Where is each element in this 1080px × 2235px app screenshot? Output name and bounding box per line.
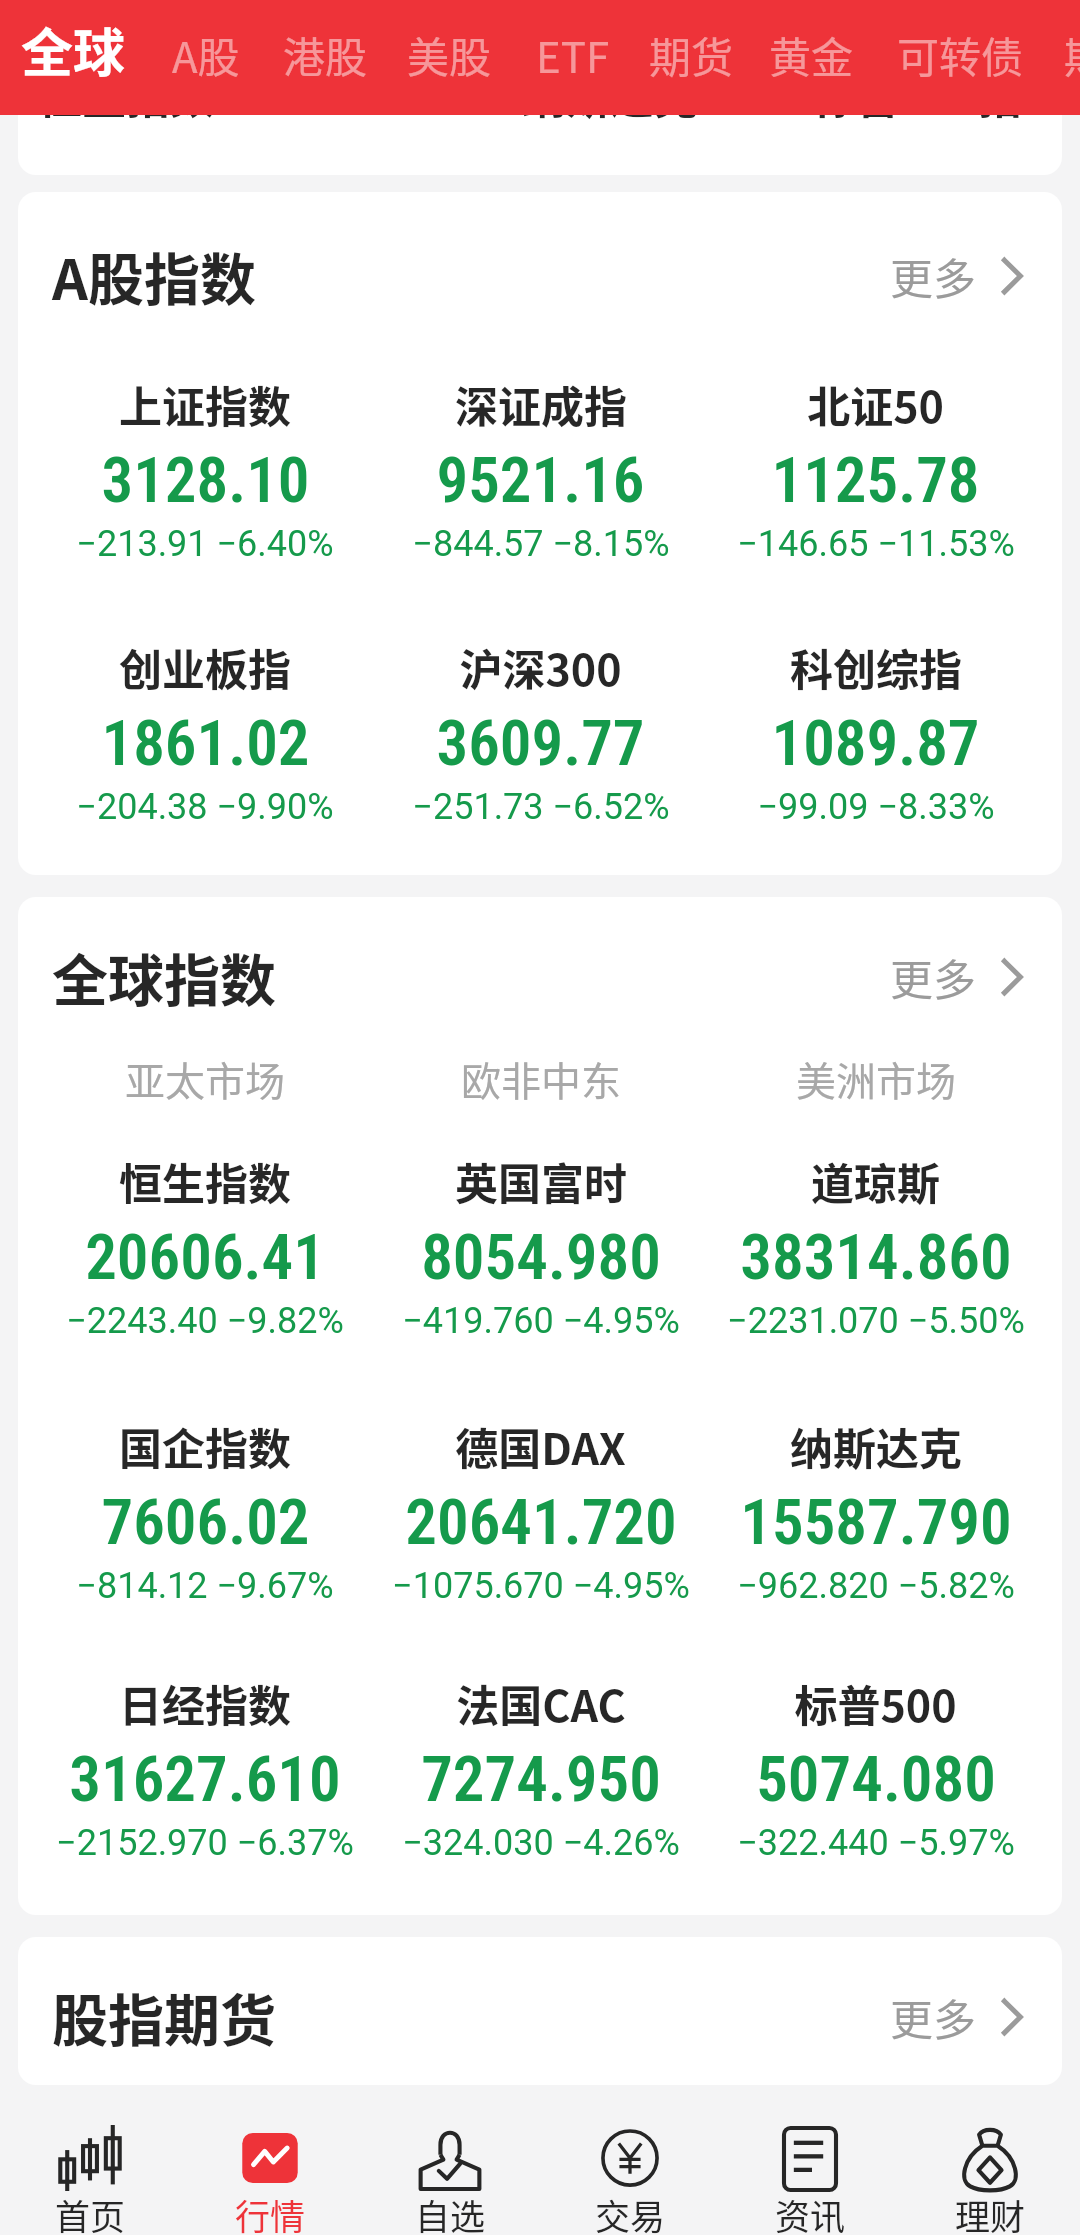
staticText: A股 [172, 24, 240, 85]
staticText: −814.12 −9.67% [76, 1565, 334, 1607]
staticText: −146.65 −11.53% [737, 523, 1015, 565]
staticText: 德国DAX [455, 1415, 626, 1477]
button[interactable]: 可转债 [877, 0, 1043, 115]
button[interactable]: 法国CAC [373, 1677, 708, 1857]
staticText: 9521.16 [436, 444, 645, 518]
staticText: −322.440 −5.97% [737, 1822, 1015, 1864]
staticText: 1089.87 [771, 707, 980, 781]
button[interactable]: 科创综指 [708, 641, 1043, 821]
staticText: 标普500 [794, 1672, 957, 1734]
staticText: 恒生指数 [38, 63, 214, 127]
staticText: 沪深300 [459, 636, 622, 698]
button[interactable]: 更多 [890, 1986, 1022, 2048]
staticText: 可转债 [897, 24, 1024, 85]
button[interactable]: 期货 [629, 0, 753, 115]
staticText: 3128.10 [101, 444, 310, 518]
staticText: 港股 [283, 24, 368, 85]
staticText: 创业板指 [119, 636, 291, 698]
staticText: 标普500指 [812, 63, 1022, 127]
button[interactable]: 恒生指数 [37, 1155, 373, 1335]
staticText: −844.57 −8.15% [412, 523, 670, 565]
staticText: 自选 [415, 2189, 486, 2235]
button[interactable]: 北证50 [708, 378, 1043, 558]
button[interactable]: 纳斯达克 [708, 1420, 1043, 1600]
staticText: 科创综指 [790, 636, 962, 698]
staticText: 亚太市场 [125, 1050, 285, 1108]
button[interactable]: 港股 [263, 0, 387, 115]
staticText: −99.09 −8.33% [757, 786, 995, 828]
staticText: 更多 [890, 245, 976, 307]
staticText: 7606.02 [101, 1486, 310, 1560]
staticText: 美股 [407, 24, 492, 85]
staticText: 美洲市场 [796, 1050, 956, 1108]
button[interactable]: 首页 [0, 2085, 180, 2235]
button[interactable]: 资讯 [720, 2085, 900, 2235]
button[interactable]: 国企指数 [37, 1420, 373, 1600]
staticText: 1861.02 [101, 707, 310, 781]
staticText: −2243.40 −9.82% [66, 1300, 344, 1342]
button[interactable]: 全球 [9, 0, 137, 115]
button[interactable]: A股指数 [52, 235, 256, 316]
button[interactable]: 道琼斯 [708, 1155, 1043, 1335]
button[interactable]: 交易 [540, 2085, 720, 2235]
staticText: 纳斯达克 [790, 1415, 962, 1477]
staticText: 交易 [595, 2189, 666, 2235]
staticText: 更多 [890, 946, 976, 1008]
staticText: −962.820 −5.82% [737, 1565, 1015, 1607]
button[interactable]: 股指期货 [52, 1976, 276, 2057]
staticText: −1075.670 −4.95% [392, 1565, 690, 1607]
staticText: 1125.78 [771, 444, 980, 518]
staticText: 行情 [235, 2189, 306, 2235]
button[interactable]: 期权 [1044, 0, 1080, 115]
button[interactable]: 英国富时 [373, 1155, 708, 1335]
staticText: 日经指数 [119, 1672, 291, 1734]
staticText: 更多 [890, 1986, 976, 2048]
staticText: 恒生指数 [119, 1150, 291, 1212]
staticText: −419.760 −4.95% [402, 1300, 680, 1342]
staticText: −204.38 −9.90% [76, 786, 334, 828]
staticText: −213.91 −6.40% [76, 523, 334, 565]
staticText: 全球 [21, 12, 126, 87]
button[interactable]: 全球指数 [52, 936, 276, 1017]
staticText: 20606.41 [85, 1221, 325, 1295]
button[interactable]: 美股 [387, 0, 511, 115]
staticText: 15587.790 [740, 1486, 1012, 1560]
staticText: 38314.860 [740, 1221, 1012, 1295]
staticText: −2152.970 −6.37% [56, 1822, 354, 1864]
button[interactable]: 标普500 [708, 1677, 1043, 1857]
staticText: 理财 [955, 2189, 1026, 2235]
staticText: 北证50 [807, 373, 944, 435]
button[interactable]: 更多 [890, 946, 1022, 1008]
button[interactable]: 德国DAX [373, 1420, 708, 1600]
button[interactable]: A股 [152, 0, 276, 115]
staticText: 股指期货 [52, 1976, 276, 2057]
staticText: 7274.950 [421, 1743, 661, 1817]
button[interactable]: 更多 [890, 245, 1022, 307]
staticText: 纳斯达克 [522, 63, 698, 127]
button[interactable]: 行情 [180, 2085, 360, 2235]
button[interactable]: ETF [516, 0, 682, 115]
staticText: 20641.720 [405, 1486, 677, 1560]
button[interactable]: 深证成指 [373, 378, 708, 558]
button[interactable]: 日经指数 [37, 1677, 373, 1857]
staticText: 国企指数 [119, 1415, 291, 1477]
staticText: 5074.080 [756, 1743, 996, 1817]
staticText: 英国富时 [455, 1150, 627, 1212]
staticText: −251.73 −6.52% [412, 786, 670, 828]
staticText: 期货 [649, 24, 734, 85]
button[interactable]: 黄金 [749, 0, 873, 115]
button[interactable]: 创业板指 [37, 641, 373, 821]
staticText: 资讯 [775, 2189, 846, 2235]
staticText: 8054.980 [421, 1221, 661, 1295]
button[interactable]: 上证指数 [37, 378, 373, 558]
staticText: ETF [536, 24, 610, 85]
staticText: 道琼斯 [811, 1150, 940, 1212]
staticText: −2231.070 −5.50% [727, 1300, 1025, 1342]
button[interactable]: 沪深300 [373, 641, 708, 821]
staticText: 黄金 [769, 24, 854, 85]
staticText: −324.030 −4.26% [402, 1822, 680, 1864]
button[interactable]: 理财 [900, 2085, 1080, 2235]
staticText: 全球指数 [52, 936, 276, 1017]
button[interactable]: 自选 [360, 2085, 540, 2235]
staticText: 首页 [55, 2189, 126, 2235]
